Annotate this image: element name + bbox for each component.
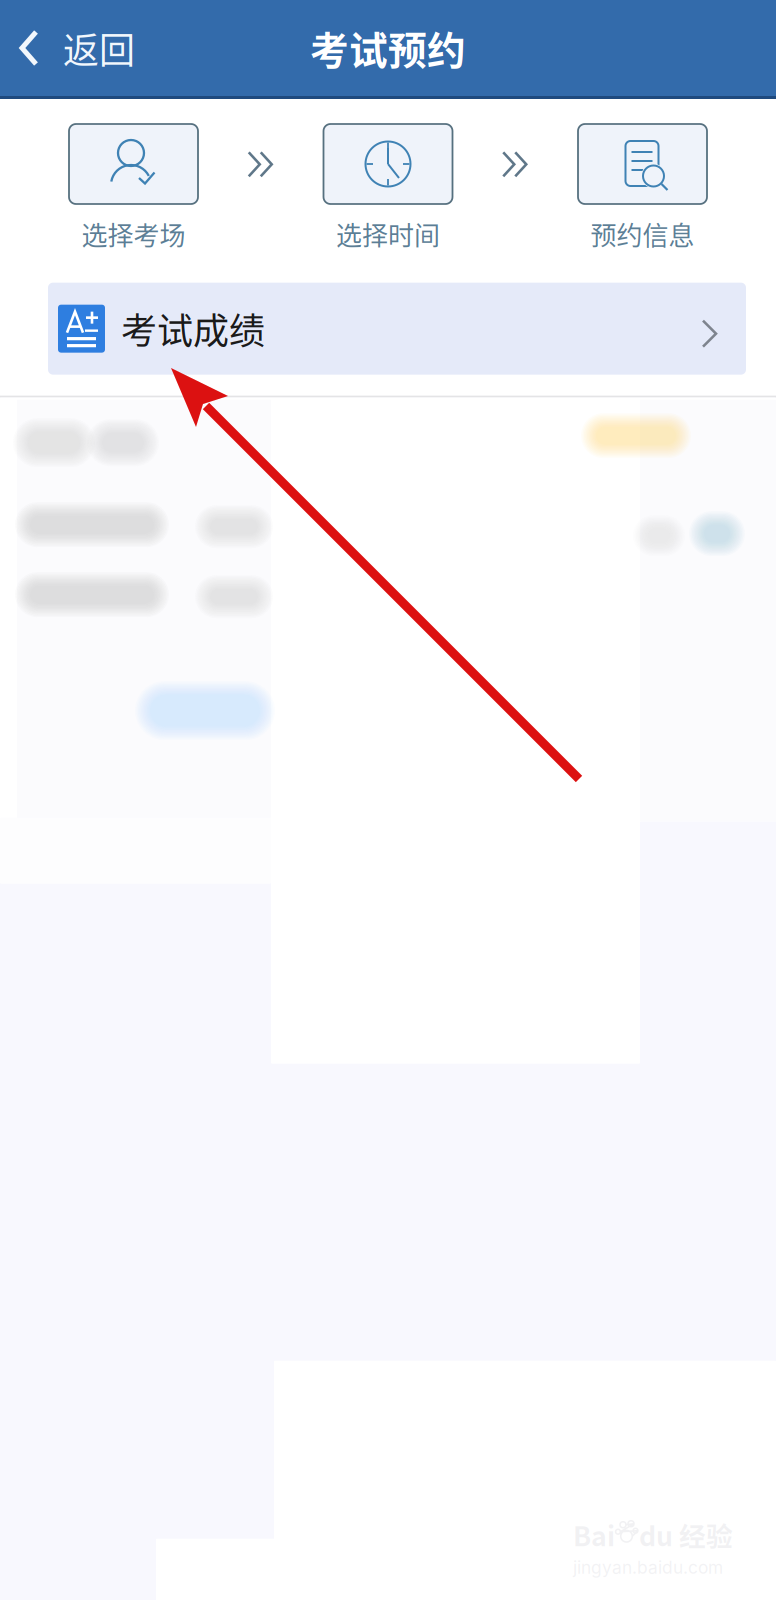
staticText: 选择考场 [81, 215, 185, 253]
staticText: 考试成绩 [121, 303, 265, 355]
button[interactable]: 返回 [0, 13, 151, 83]
button[interactable]: 选择时间 [323, 124, 452, 253]
staticText: jingyan.baidu.com [573, 1557, 723, 1578]
staticText: Bai [573, 1515, 615, 1554]
staticText: 考试预约 [310, 20, 466, 76]
button[interactable]: 考试成绩 [0, 283, 776, 375]
staticText: 预约信息 [590, 215, 694, 253]
staticText: du 经验 [639, 1515, 733, 1554]
staticText: 选择时间 [336, 215, 440, 253]
button[interactable]: 选择考场 [69, 124, 198, 253]
button[interactable]: 预约信息 [578, 124, 707, 253]
staticText: 返回 [63, 22, 135, 74]
